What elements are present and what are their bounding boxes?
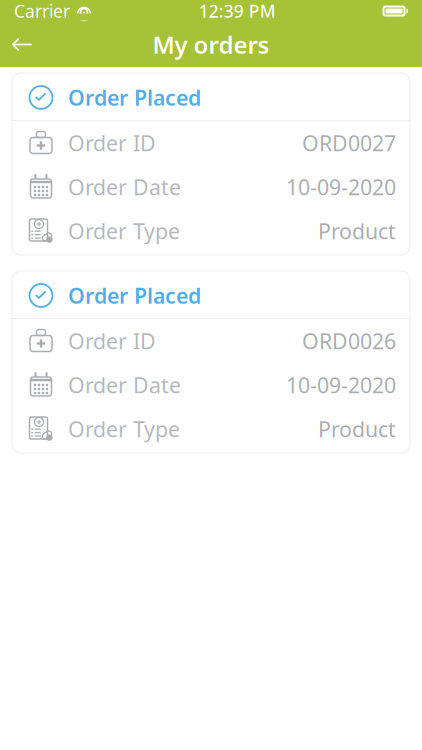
- staticText: 10-09-2020: [286, 173, 396, 201]
- button[interactable]: Back: [0, 24, 44, 64]
- staticText: Order Type: [68, 217, 180, 245]
- staticText: My orders: [152, 29, 269, 60]
- staticText: Order Date: [68, 173, 181, 201]
- staticText: Order Date: [68, 371, 181, 399]
- staticText: Order ID: [68, 327, 156, 355]
- staticText: Product: [318, 415, 396, 443]
- staticText: ORD0027: [302, 129, 396, 157]
- staticText: Order Placed: [68, 281, 201, 310]
- button[interactable]: Order Placed: [12, 271, 410, 453]
- staticText: ORD0026: [302, 327, 396, 355]
- staticText: 10-09-2020: [286, 371, 396, 399]
- staticText: Carrier: [14, 0, 70, 22]
- button[interactable]: Order Placed: [12, 73, 410, 255]
- staticText: Order Type: [68, 415, 180, 443]
- staticText: 12:39 PM: [199, 0, 276, 22]
- staticText: Order ID: [68, 129, 156, 157]
- staticText: Product: [318, 217, 396, 245]
- staticText: Order Placed: [68, 83, 201, 112]
